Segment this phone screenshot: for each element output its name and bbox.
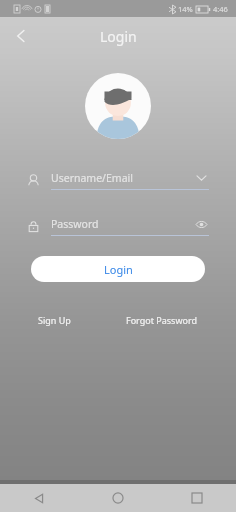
staticText: Forgot Password — [126, 314, 198, 326]
button[interactable]: Show password — [193, 216, 209, 232]
button[interactable]: Recent apps — [157, 484, 236, 512]
staticText: Login — [100, 27, 137, 46]
button[interactable]: Back — [6, 21, 36, 51]
staticText: 14% — [178, 4, 193, 14]
button[interactable]: Home — [78, 484, 157, 512]
button[interactable]: Username/Email — [27, 167, 209, 193]
staticText: Sign Up — [38, 314, 71, 326]
button[interactable]: Profile photo — [85, 73, 151, 139]
button[interactable]: Forgot Password — [124, 310, 200, 330]
button[interactable]: Login — [31, 256, 205, 282]
staticText: 4:46 — [213, 4, 228, 14]
button[interactable]: Show saved accounts — [193, 170, 209, 186]
button[interactable]: Password — [27, 213, 209, 239]
button[interactable]: Back — [0, 484, 78, 512]
staticText: Password — [51, 217, 193, 231]
staticText: Login — [104, 262, 133, 277]
button[interactable]: Sign Up — [36, 310, 73, 330]
staticText: Username/Email — [51, 171, 193, 185]
